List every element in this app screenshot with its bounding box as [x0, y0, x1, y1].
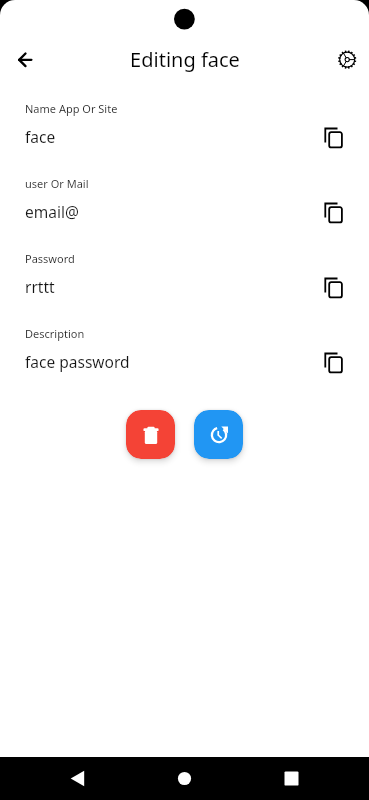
button[interactable]: Settings [331, 44, 363, 76]
button[interactable]: Copy Name App Or Site [321, 121, 349, 149]
staticText: Name App Or Site [25, 101, 118, 116]
button[interactable]: Copy user Or Mail [321, 196, 349, 224]
button[interactable]: Copy Password [321, 271, 349, 299]
button[interactable]: Home [169, 763, 200, 794]
button[interactable]: Back [62, 763, 93, 794]
staticText: Description [25, 326, 85, 341]
staticText: face password [25, 351, 130, 372]
button[interactable]: Copy Description [321, 346, 349, 374]
button[interactable]: Delete [126, 410, 175, 459]
button[interactable]: Restore [194, 410, 243, 459]
staticText: face [25, 126, 56, 147]
staticText: rrttt [25, 276, 55, 297]
button[interactable]: Recents [276, 763, 307, 794]
staticText: Editing face [130, 46, 240, 73]
staticText: Password [25, 251, 75, 266]
staticText: user Or Mail [25, 176, 89, 191]
staticText: email@ [25, 201, 79, 222]
button[interactable]: Back [8, 44, 40, 76]
